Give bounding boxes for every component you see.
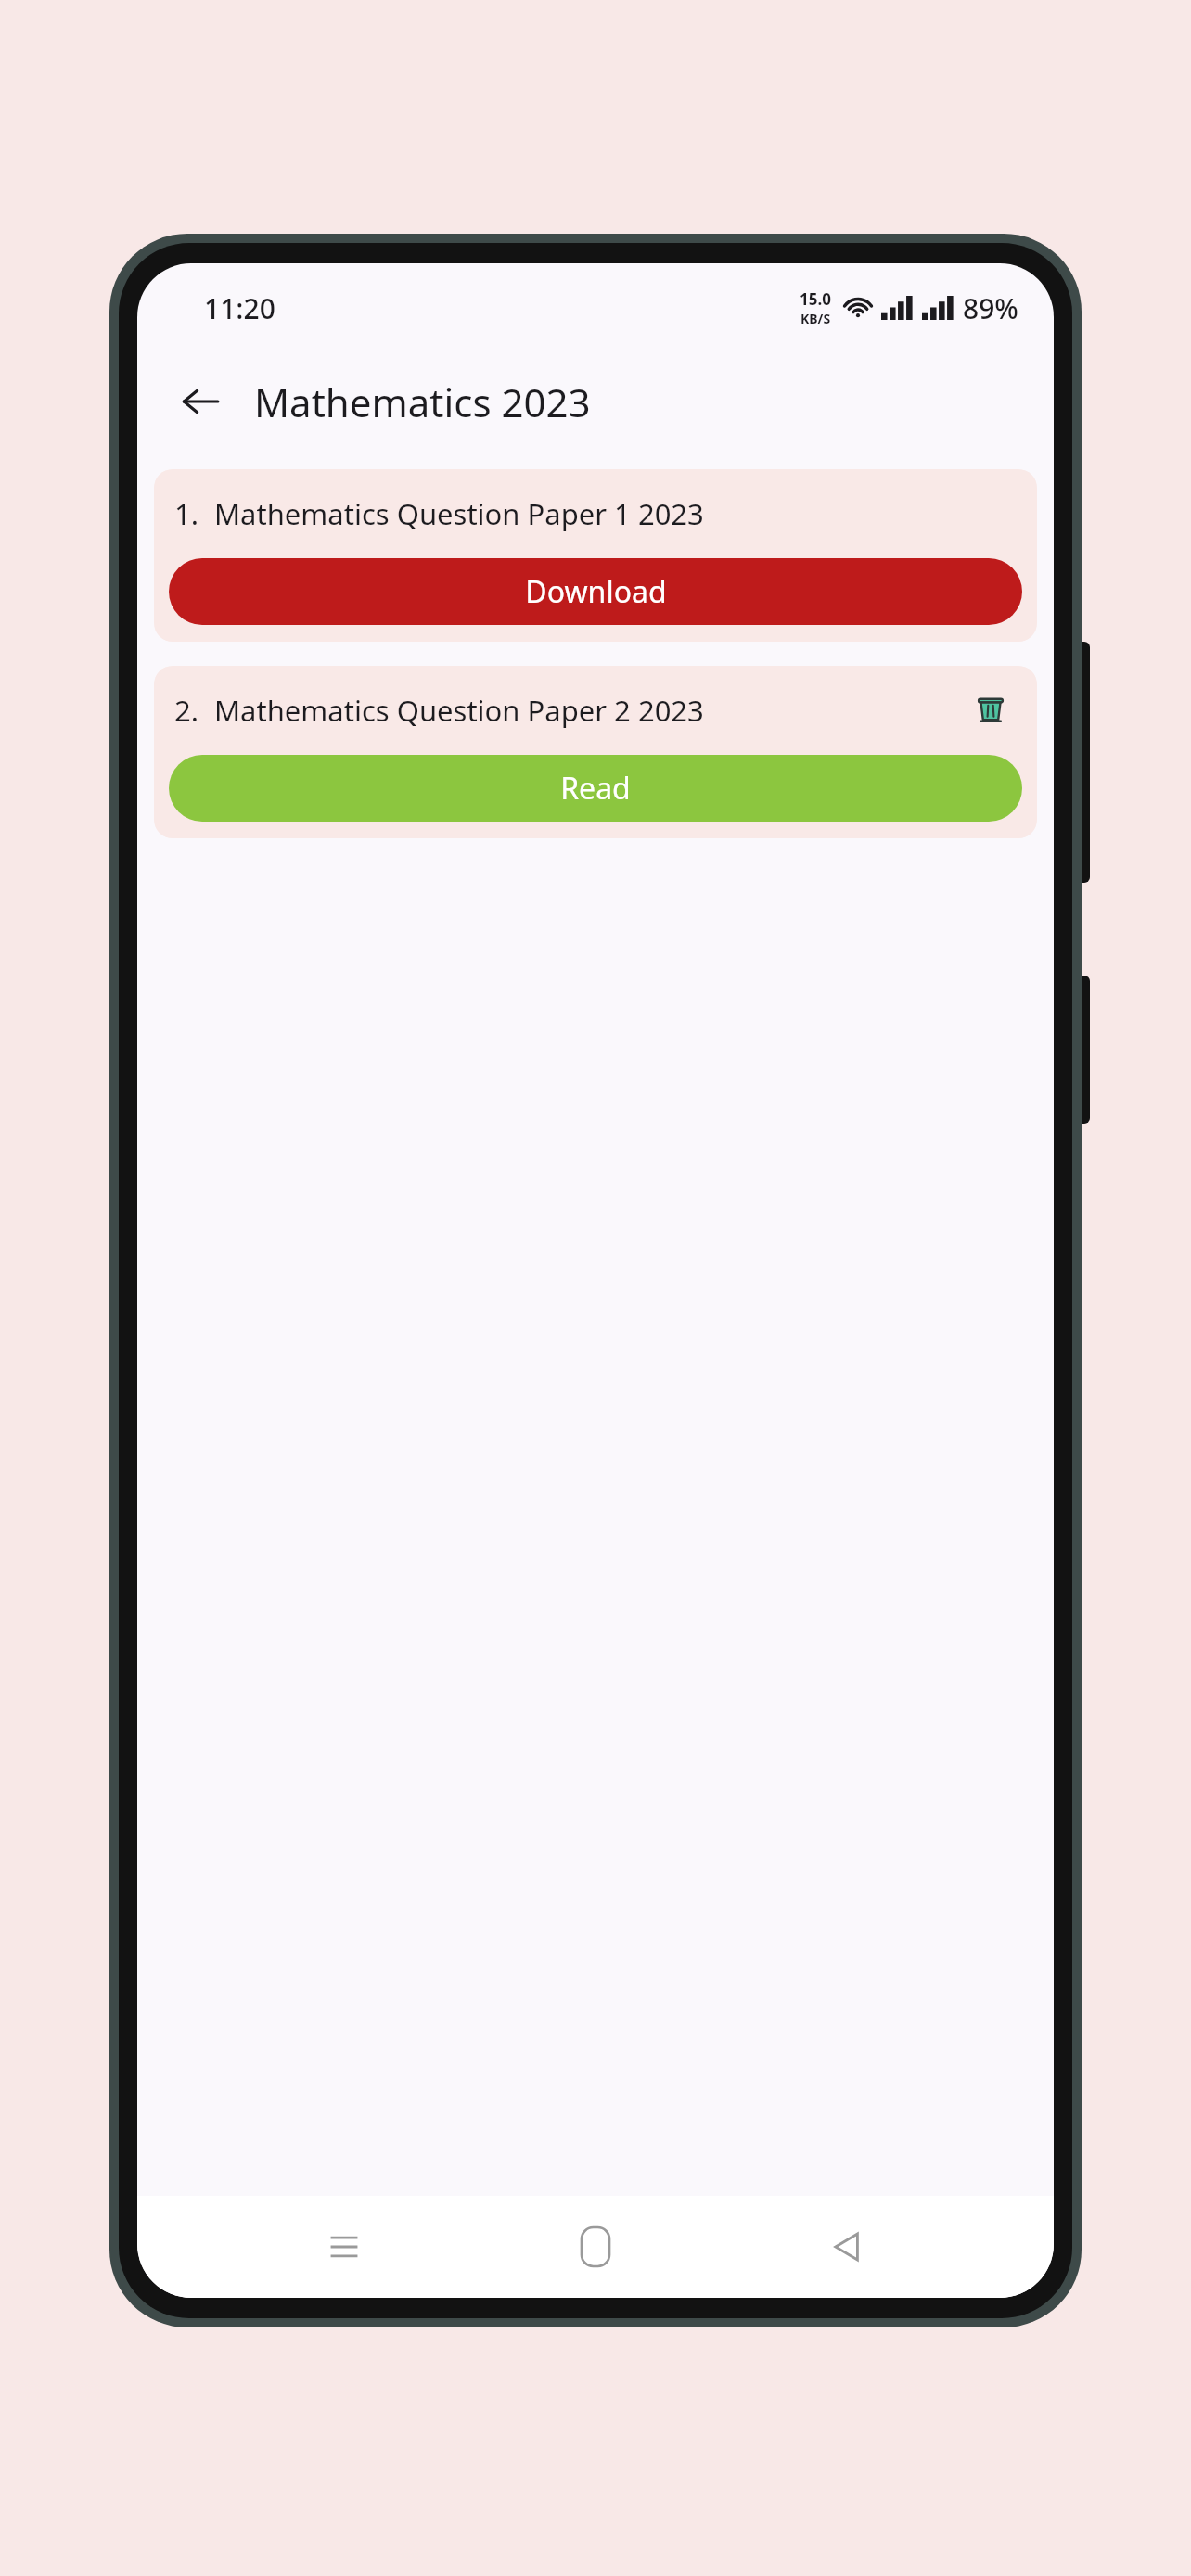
button[interactable]: Delete — [965, 684, 1017, 736]
staticText: Mathematics Question Paper 2 2023 — [214, 691, 704, 730]
staticText: 11:20 — [204, 289, 275, 327]
staticText: 2. — [174, 691, 199, 730]
staticText: Read — [560, 768, 631, 809]
staticText: Mathematics Question Paper 1 2023 — [214, 494, 704, 533]
button[interactable]: Home — [551, 2202, 640, 2291]
staticText: KB/S — [800, 310, 831, 327]
button[interactable]: 2. — [154, 666, 1037, 838]
button[interactable]: Back — [167, 368, 234, 435]
staticText: Mathematics 2023 — [254, 376, 591, 428]
button[interactable]: Recent apps — [300, 2202, 389, 2291]
button[interactable]: Read — [169, 755, 1022, 822]
button[interactable]: Download — [169, 558, 1022, 625]
button[interactable]: Back — [802, 2202, 891, 2291]
staticText: 15.0 — [800, 288, 831, 310]
button[interactable]: 1. — [154, 469, 1037, 642]
staticText: Download — [525, 571, 667, 612]
staticText: 89% — [963, 289, 1018, 327]
staticText: 1. — [174, 494, 199, 533]
